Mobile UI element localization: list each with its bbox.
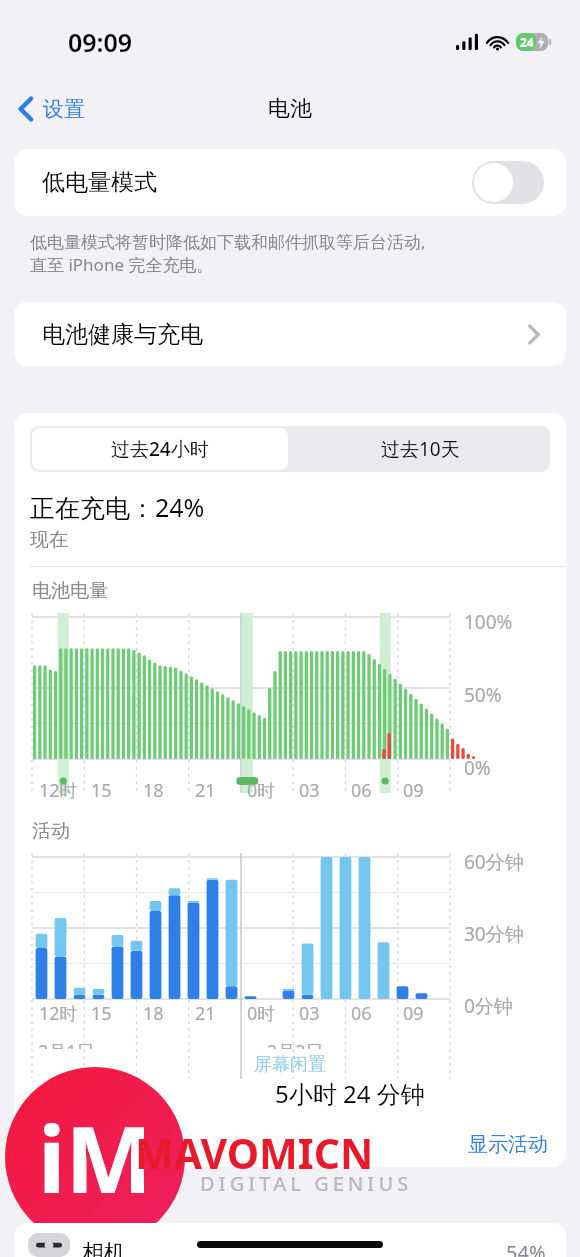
staticText: 06 bbox=[351, 1001, 372, 1026]
staticText: MAVOMICN bbox=[135, 1125, 374, 1181]
staticText: 设置 bbox=[43, 96, 85, 122]
button[interactable]: 过去24小时 bbox=[32, 428, 288, 470]
staticText: 过去10天 bbox=[381, 436, 460, 462]
staticText: 直至 iPhone 完全充电。 bbox=[30, 253, 214, 276]
button[interactable]: 显示活动 bbox=[468, 1132, 548, 1157]
staticText: 09 bbox=[403, 778, 424, 803]
staticText: 21 bbox=[195, 778, 216, 803]
staticText: 100% bbox=[464, 609, 513, 635]
staticText: 0时 bbox=[247, 1001, 276, 1026]
staticText: 低电量模式将暂时降低如下载和邮件抓取等后台活动, bbox=[30, 230, 426, 253]
staticText: 2月2日 bbox=[267, 1039, 324, 1049]
staticText: 现在 bbox=[30, 528, 68, 552]
staticText: 电池 bbox=[268, 95, 312, 123]
button[interactable]: 相机 bbox=[14, 1223, 566, 1257]
staticText: 0时 bbox=[247, 778, 276, 803]
staticText: 18 bbox=[143, 1001, 164, 1026]
staticText: 06 bbox=[351, 778, 372, 803]
staticText: iM bbox=[38, 1095, 153, 1220]
staticText: 相机 bbox=[82, 1239, 126, 1257]
staticText: 0分钟 bbox=[464, 993, 513, 1019]
staticText: 低电量模式 bbox=[42, 168, 157, 197]
button[interactable]: 电池健康与充电 bbox=[14, 302, 566, 366]
staticText: 18 bbox=[143, 778, 164, 803]
button[interactable]: 设置 bbox=[10, 90, 93, 128]
button[interactable]: 低电量模式开关 bbox=[472, 161, 544, 204]
staticText: 12时 bbox=[39, 1001, 78, 1026]
staticText: 60分钟 bbox=[464, 849, 524, 875]
staticText: 03 bbox=[299, 778, 320, 803]
staticText: 过去24小时 bbox=[111, 436, 209, 462]
staticText: DIGITAL GENIUS bbox=[200, 1170, 413, 1197]
staticText: 电池健康与充电 bbox=[42, 320, 203, 349]
staticText: 15 bbox=[91, 1001, 112, 1026]
staticText: 5小时 24 分钟 bbox=[275, 1077, 425, 1110]
staticText: 电池电量 bbox=[32, 579, 108, 603]
staticText: 屏幕闲置 bbox=[254, 1053, 326, 1076]
staticText: 0% bbox=[464, 755, 491, 781]
staticText: 09 bbox=[403, 1001, 424, 1026]
staticText: 15 bbox=[91, 778, 112, 803]
staticText: 活动 bbox=[32, 819, 70, 843]
staticText: 30分钟 bbox=[464, 921, 524, 947]
staticText: 50% bbox=[464, 682, 502, 708]
button[interactable]: 过去10天 bbox=[290, 426, 550, 472]
staticText: 24 bbox=[520, 34, 534, 50]
staticText: 09:09 bbox=[68, 25, 133, 59]
button[interactable]: 低电量模式 bbox=[14, 149, 566, 216]
staticText: 正在充电：24% bbox=[30, 490, 205, 524]
staticText: 12时 bbox=[39, 778, 78, 803]
staticText: 21 bbox=[195, 1001, 216, 1026]
staticText: 03 bbox=[299, 1001, 320, 1026]
staticText: 2月1日 bbox=[38, 1039, 95, 1049]
staticText: 54% bbox=[506, 1239, 546, 1257]
